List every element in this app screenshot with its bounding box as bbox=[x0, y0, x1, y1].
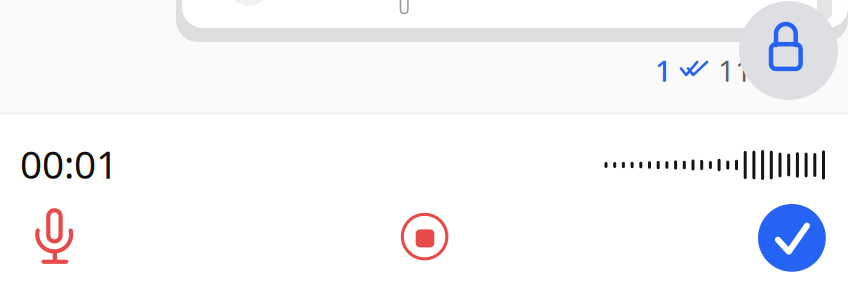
button[interactable]: Microphone bbox=[25, 199, 81, 269]
staticText: 11 bbox=[718, 51, 752, 90]
button[interactable]: Lock recording bbox=[739, 1, 838, 100]
button[interactable]: Send voice message bbox=[758, 204, 826, 272]
staticText: 00:01 bbox=[20, 138, 118, 189]
staticText: 1 bbox=[655, 51, 672, 90]
button[interactable]: Stop recording bbox=[395, 207, 455, 267]
